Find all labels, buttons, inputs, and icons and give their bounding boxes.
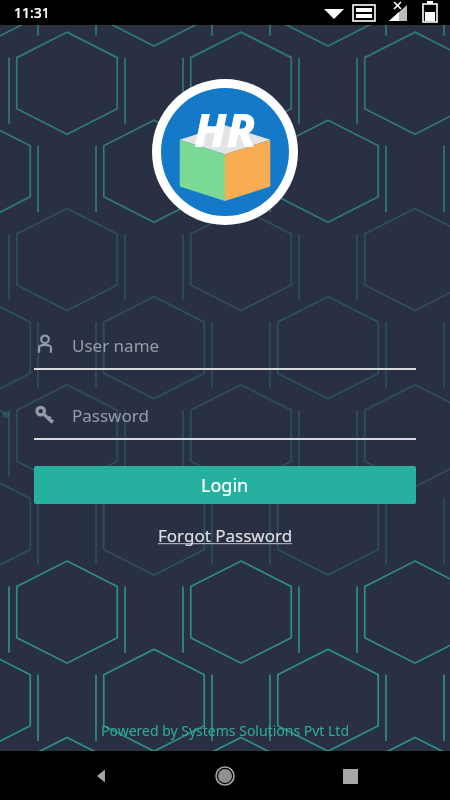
staticText: 11:31	[14, 3, 50, 22]
button[interactable]: Forgot Password	[148, 520, 303, 551]
button[interactable]: Login	[34, 466, 416, 504]
staticText: HR	[194, 98, 256, 161]
staticText: Forgot Password	[158, 524, 293, 547]
button[interactable]: User name	[34, 328, 416, 370]
staticText: User name	[72, 334, 160, 357]
button[interactable]: Home	[201, 752, 249, 800]
staticText: Powered by Systems Solutions Pvt Ltd	[0, 721, 450, 740]
button[interactable]: Back	[77, 752, 125, 800]
button[interactable]: Recent apps	[326, 752, 374, 800]
staticText: Password	[72, 404, 149, 427]
staticText: Login	[201, 473, 249, 498]
button[interactable]: Password	[34, 398, 416, 440]
